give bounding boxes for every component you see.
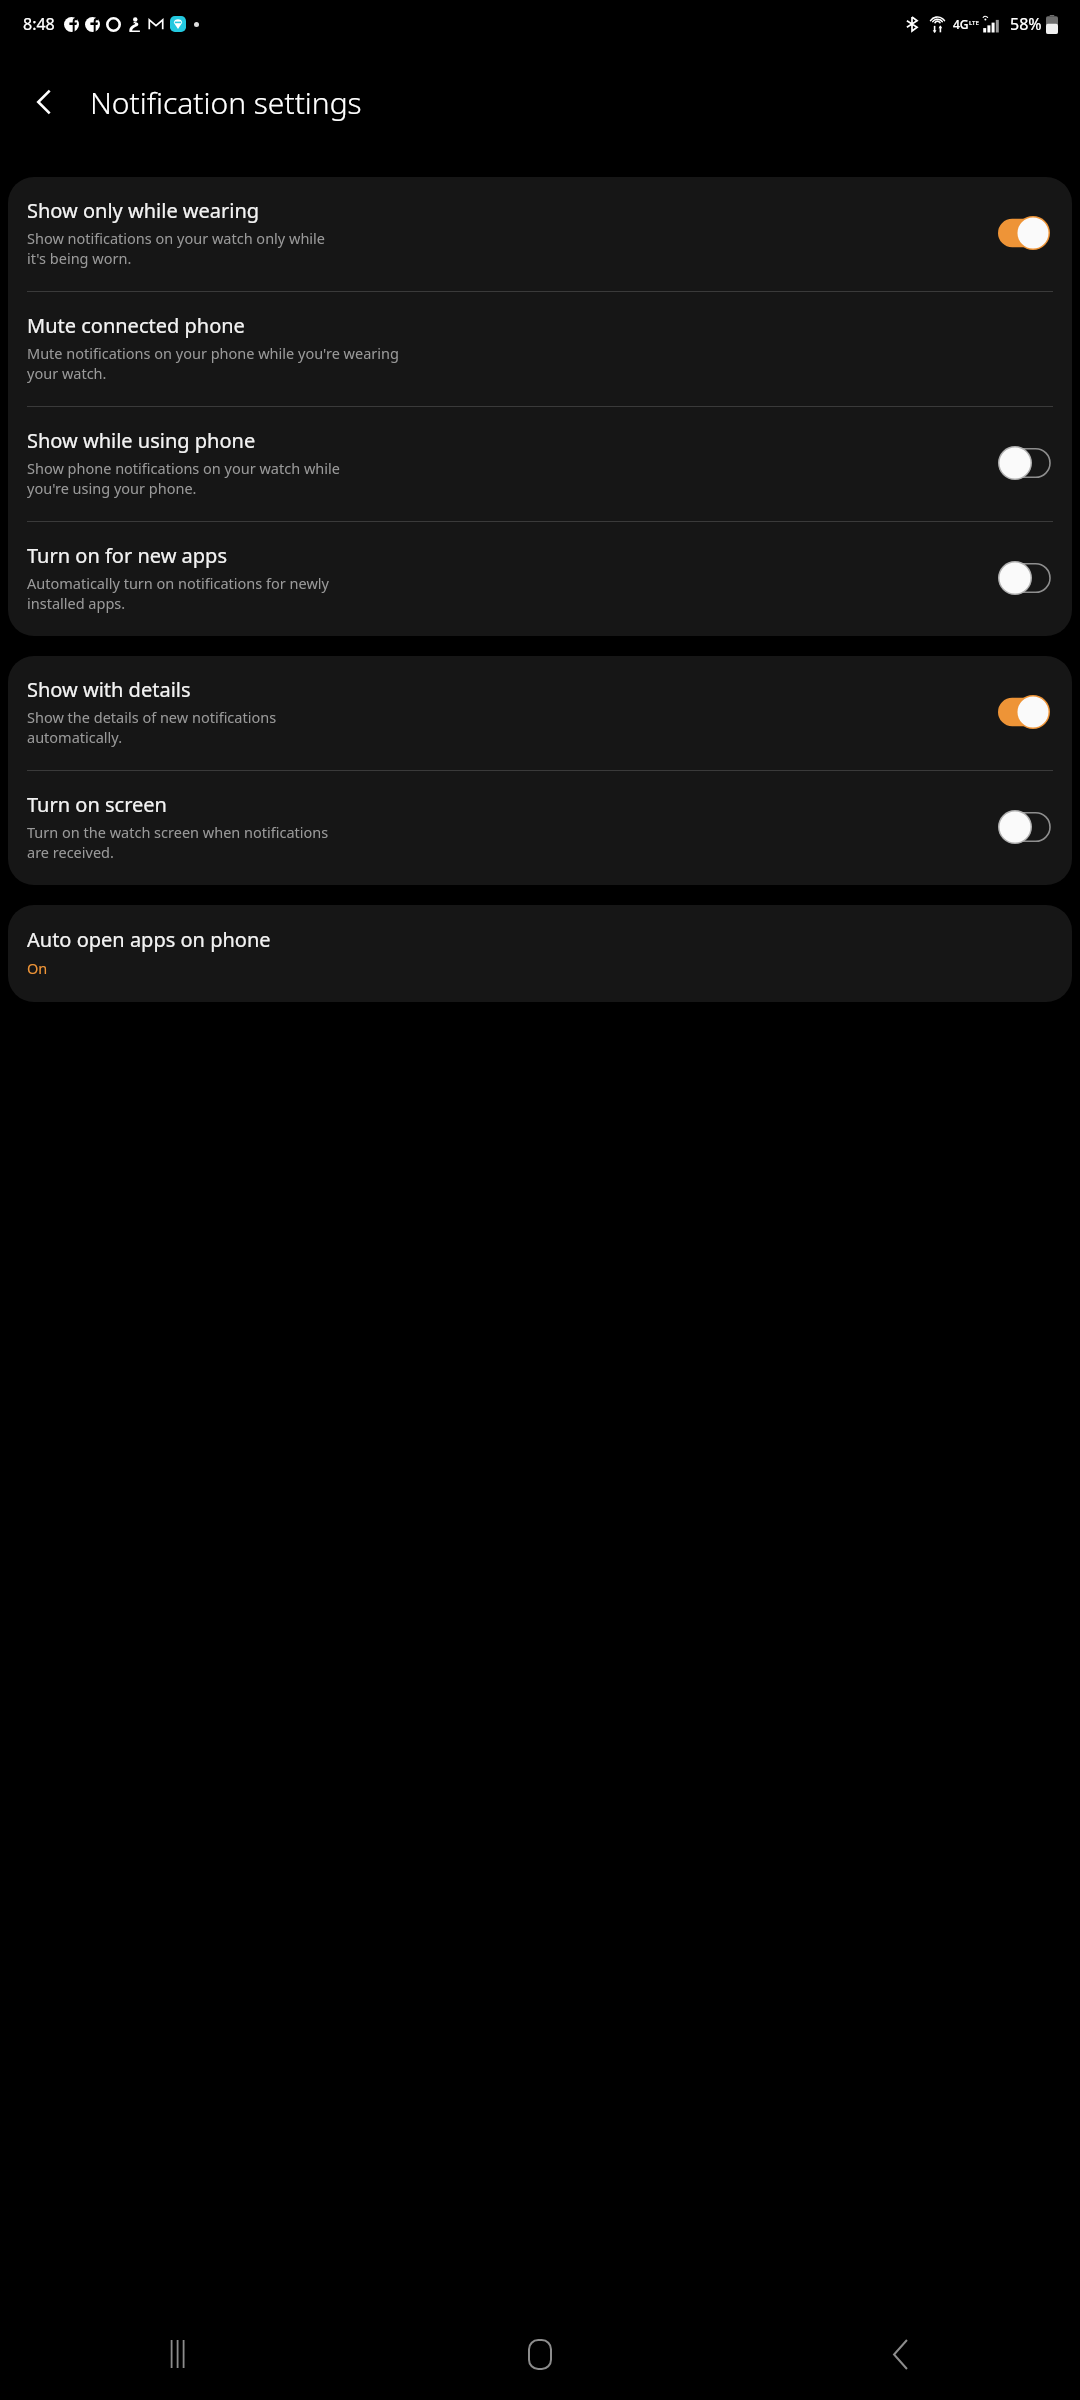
- button[interactable]: Turn on screen, off: [995, 807, 1053, 847]
- staticText: Turn on screen: [27, 791, 167, 818]
- button[interactable]: Show with details, on: [995, 692, 1053, 732]
- staticText: Show only while wearing: [27, 197, 260, 224]
- button[interactable]: Auto open apps on phone: [8, 905, 1072, 1002]
- staticText: Show notifications on your watch only wh…: [27, 228, 326, 269]
- button[interactable]: Back: [14, 71, 76, 133]
- button[interactable]: Home: [504, 2318, 576, 2390]
- button[interactable]: Show with details: [8, 656, 1072, 770]
- button[interactable]: Back: [864, 2318, 936, 2390]
- staticText: Automatically turn on notifications for …: [27, 573, 329, 614]
- button[interactable]: Turn on for new apps, off: [995, 558, 1053, 598]
- button[interactable]: Show while using phone, off: [995, 443, 1053, 483]
- button[interactable]: Turn on screen: [8, 771, 1072, 885]
- staticText: Show with details: [27, 676, 191, 703]
- button[interactable]: Mute connected phone: [8, 292, 1072, 406]
- staticText: 58%: [1010, 13, 1042, 35]
- staticText: Turn on the watch screen when notificati…: [27, 822, 329, 863]
- staticText: Mute notifications on your phone while y…: [27, 343, 399, 384]
- button[interactable]: Show only while wearing, on: [995, 213, 1053, 253]
- staticText: On: [27, 958, 48, 978]
- button[interactable]: Show while using phone: [8, 407, 1072, 521]
- staticText: Show while using phone: [27, 427, 256, 454]
- staticText: 8:48: [23, 13, 55, 35]
- button[interactable]: Recent apps: [144, 2318, 216, 2390]
- staticText: Auto open apps on phone: [27, 926, 271, 953]
- staticText: Turn on for new apps: [27, 542, 227, 569]
- staticText: Show the details of new notifications au…: [27, 707, 277, 748]
- staticText: Mute connected phone: [27, 312, 245, 339]
- staticText: Show phone notifications on your watch w…: [27, 458, 340, 499]
- button[interactable]: Turn on for new apps: [8, 522, 1072, 636]
- staticText: LTE: [969, 19, 979, 27]
- staticText: 4G: [953, 16, 969, 32]
- button[interactable]: Show only while wearing: [8, 177, 1072, 291]
- staticText: Notification settings: [90, 82, 362, 123]
